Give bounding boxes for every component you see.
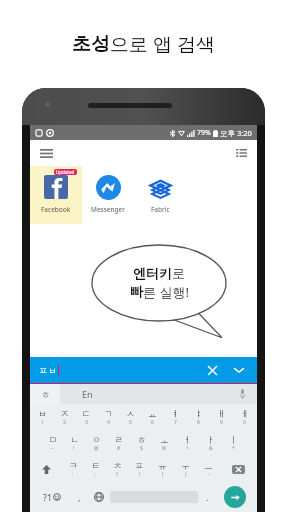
button[interactable]: ㅐ xyxy=(210,404,233,430)
staticText: ㅋ xyxy=(69,460,78,471)
staticText: 8 xyxy=(197,419,200,426)
staticText: ㅅ xyxy=(126,408,135,419)
staticText: ㅓ xyxy=(183,434,192,445)
button[interactable]: ㅓ xyxy=(176,430,199,456)
button[interactable]: ㅂ xyxy=(31,404,53,430)
button[interactable]: ㅁ xyxy=(41,430,63,456)
staticText: $ xyxy=(140,445,143,452)
staticText: ?1 xyxy=(43,491,53,503)
staticText: # xyxy=(117,445,121,452)
button[interactable]: Change language xyxy=(88,482,110,512)
button[interactable]: ㅑ xyxy=(187,404,210,430)
button[interactable]: ㅍㅂ xyxy=(30,357,257,383)
staticText: 0 xyxy=(243,419,246,426)
staticText: ㅐ xyxy=(217,408,226,419)
button[interactable]: ㅌ xyxy=(84,456,106,482)
button[interactable]: Input mode xyxy=(30,384,60,404)
button[interactable]: , xyxy=(70,482,88,512)
button[interactable]: Fabric xyxy=(134,166,186,224)
button[interactable]: . xyxy=(198,482,216,512)
button[interactable]: ㄹ xyxy=(107,430,130,456)
staticText: ㄷ xyxy=(82,408,91,419)
staticText: ㅕ xyxy=(171,408,180,419)
button[interactable]: ㅈ xyxy=(53,404,75,430)
staticText: ~ xyxy=(51,445,54,452)
button[interactable]: ㅇ xyxy=(85,430,107,456)
staticText: ㅑ xyxy=(194,408,203,419)
staticText: ㅣ xyxy=(229,434,238,445)
staticText: ? xyxy=(116,471,119,478)
staticText: 5 xyxy=(129,419,132,426)
staticText: ㅁ xyxy=(48,434,57,445)
button[interactable]: ?1 xyxy=(33,482,70,512)
staticText: ㅛ xyxy=(148,408,157,419)
button[interactable]: Messenger xyxy=(82,166,134,224)
staticText: ㅠ xyxy=(158,460,167,471)
staticText: ㅏ xyxy=(206,434,215,445)
staticText: En xyxy=(82,388,93,400)
button[interactable]: ㅕ xyxy=(164,404,187,430)
button[interactable]: ㅣ xyxy=(222,430,245,456)
button[interactable]: Voice input xyxy=(234,386,250,402)
staticText: ; xyxy=(94,471,96,478)
button[interactable]: ㅛ xyxy=(141,404,164,430)
button[interactable]: Updated xyxy=(30,166,82,224)
button[interactable]: ㅍ xyxy=(128,456,151,482)
staticText: ㅎ xyxy=(41,389,50,400)
staticText: 초성 xyxy=(72,32,110,56)
staticText: ㅊ xyxy=(113,460,122,471)
staticText: 9 xyxy=(220,419,223,426)
staticText: @ xyxy=(94,445,99,452)
staticText: ) xyxy=(185,471,187,478)
button[interactable]: Backspace xyxy=(220,456,256,482)
staticText: ㄴ xyxy=(70,434,79,445)
button[interactable]: ㅗ xyxy=(153,430,176,456)
button[interactable]: ㅔ xyxy=(233,404,256,430)
staticText: ㅗ xyxy=(160,434,169,445)
staticText: ㅔ xyxy=(240,408,249,419)
staticText: 빠 xyxy=(130,283,143,299)
staticText: 엔터키 xyxy=(133,265,172,281)
staticText: & xyxy=(209,445,213,452)
staticText: % xyxy=(162,445,167,452)
button[interactable]: ㅠ xyxy=(151,456,174,482)
button[interactable]: ㅊ xyxy=(106,456,128,482)
button[interactable]: ㄴ xyxy=(63,430,85,456)
button[interactable]: Enter xyxy=(224,486,246,508)
button[interactable]: ㄱ xyxy=(97,404,119,430)
staticText: 7 xyxy=(174,419,177,426)
button[interactable]: Shift xyxy=(31,456,62,482)
button[interactable]: Collapse xyxy=(230,361,248,379)
button[interactable]: ㅅ xyxy=(119,404,141,430)
button[interactable]: ㅎ xyxy=(130,430,153,456)
staticText: 른 실행! xyxy=(143,283,189,301)
staticText: Fabric xyxy=(151,205,170,214)
button[interactable]: ㅡ xyxy=(197,456,220,482)
staticText: ㅍㅂ xyxy=(39,365,57,376)
staticText: Messenger xyxy=(91,205,125,214)
staticText: ㄹ xyxy=(114,434,123,445)
staticText: ㅜ xyxy=(181,460,190,471)
staticText: ㅈ xyxy=(60,408,69,419)
button[interactable]: ㅏ xyxy=(199,430,222,456)
staticText: ㄱ xyxy=(104,408,113,419)
button[interactable]: Menu xyxy=(36,143,56,163)
staticText: ! xyxy=(73,445,75,452)
staticText: 2 xyxy=(63,419,66,426)
staticText: 79% xyxy=(197,128,211,138)
button[interactable]: ㅋ xyxy=(62,456,84,482)
button[interactable]: ㅜ xyxy=(174,456,197,482)
staticText: Updated xyxy=(56,169,75,175)
staticText: * xyxy=(232,445,235,452)
staticText: , xyxy=(78,491,81,503)
staticText: ㅂ xyxy=(38,408,47,419)
button[interactable]: List view xyxy=(231,143,251,163)
button[interactable]: ㄷ xyxy=(75,404,97,430)
button[interactable]: Clear xyxy=(203,361,221,379)
staticText: ! xyxy=(139,471,141,478)
staticText: 4 xyxy=(107,419,110,426)
staticText: Facebook xyxy=(41,205,71,214)
staticText: 오후 3:20 xyxy=(220,128,252,138)
staticText: ㅍ xyxy=(135,460,144,471)
